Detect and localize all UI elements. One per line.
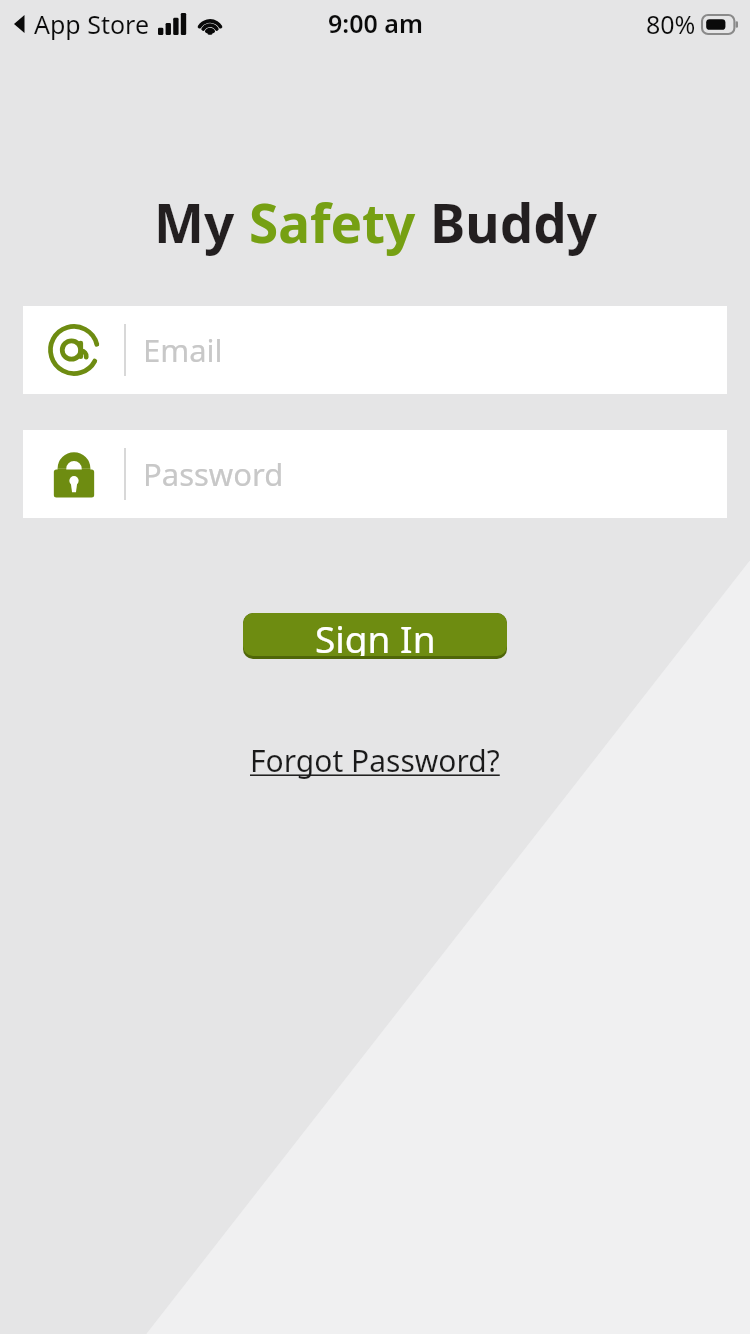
staticText: Safety xyxy=(249,186,430,258)
staticText: 9:00 am xyxy=(328,6,423,40)
button[interactable]: Forgot Password? xyxy=(240,734,510,787)
button[interactable]: Email xyxy=(23,306,727,394)
staticText: Password xyxy=(143,453,284,495)
staticText: Sign In xyxy=(315,613,436,656)
staticText: App Store xyxy=(34,7,150,41)
staticText: 80% xyxy=(646,7,696,41)
staticText: Email xyxy=(143,329,223,371)
button[interactable]: Sign In xyxy=(243,613,507,659)
staticText: My xyxy=(154,186,249,258)
staticText: Buddy xyxy=(430,186,597,258)
button[interactable]: Password xyxy=(23,430,727,518)
staticText: Forgot Password? xyxy=(250,740,500,781)
